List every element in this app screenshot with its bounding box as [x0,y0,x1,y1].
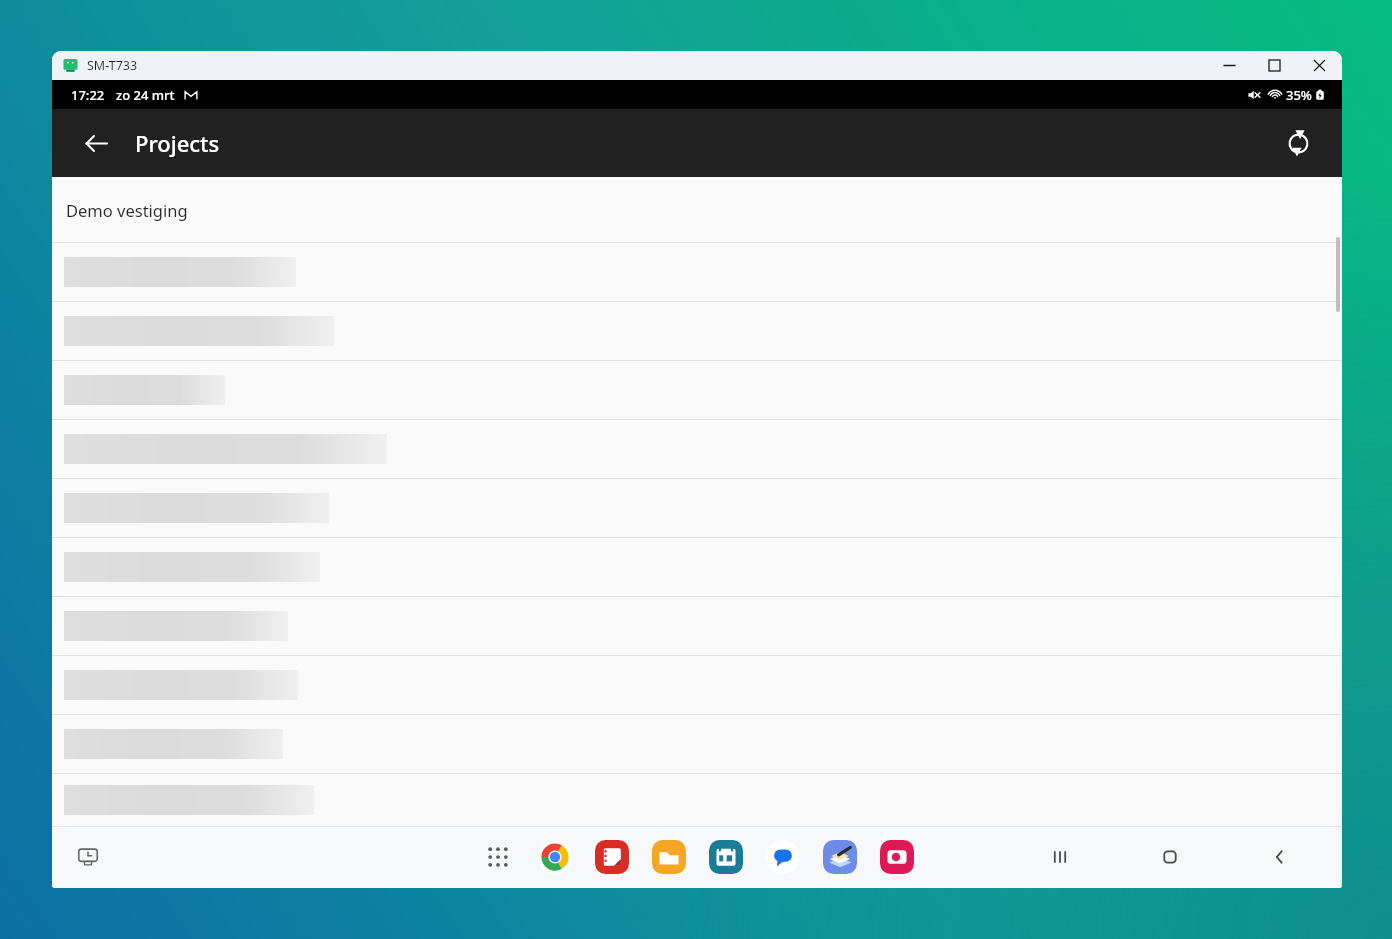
button[interactable] [52,243,1342,301]
staticText: Demo vestiging [66,199,188,221]
button[interactable] [52,302,1342,360]
button[interactable]: My Files [650,838,688,876]
button[interactable]: Demo vestiging [52,177,1342,242]
staticText: Projects [135,128,220,158]
button[interactable]: Minimize [1207,51,1252,80]
staticText: 17:22 [71,86,105,104]
button[interactable] [52,361,1342,419]
button[interactable]: Camera [878,838,916,876]
button[interactable] [52,479,1342,537]
button[interactable] [52,420,1342,478]
button[interactable] [52,774,1342,826]
button[interactable]: Maximize [1252,51,1297,80]
button[interactable]: Refresh [1271,116,1325,170]
button[interactable] [52,656,1342,714]
button[interactable] [52,538,1342,596]
staticText: SM-T733 [87,57,138,74]
staticText: 35% [1286,86,1312,104]
button[interactable]: Messages [764,838,802,876]
button[interactable]: Screen timeout [66,835,110,879]
button[interactable]: Calendar [707,838,745,876]
button[interactable]: Chrome [536,838,574,876]
button[interactable]: All apps [479,838,517,876]
button[interactable]: Close [1297,51,1342,80]
staticText: zo 24 mrt [116,86,175,104]
button[interactable] [52,715,1342,773]
button[interactable]: Home [1148,835,1192,879]
button[interactable]: Recent apps [1038,835,1082,879]
button[interactable]: Notes [593,838,631,876]
button[interactable] [52,597,1342,655]
button[interactable]: Back [1258,835,1302,879]
button[interactable]: Smart Switch [821,838,859,876]
button[interactable]: Back [69,116,123,170]
